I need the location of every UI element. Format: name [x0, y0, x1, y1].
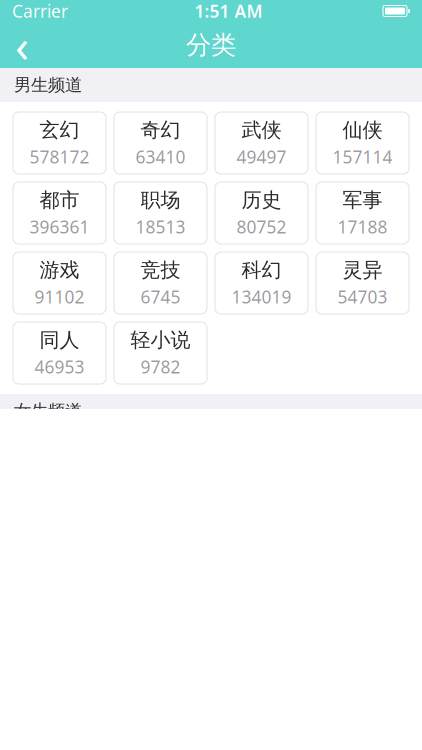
- button[interactable]: 历史: [215, 182, 308, 244]
- button[interactable]: 游戏: [13, 252, 106, 314]
- staticText: 9782: [140, 355, 180, 378]
- staticText: 157114: [332, 145, 392, 168]
- staticText: 1:51 AM: [194, 0, 262, 22]
- staticText: 灵异: [342, 258, 382, 282]
- button[interactable]: 玄幻: [13, 112, 106, 174]
- staticText: 科幻: [241, 258, 281, 282]
- button[interactable]: 科幻: [215, 252, 308, 314]
- button[interactable]: Back: [0, 23, 44, 67]
- staticText: 男生频道: [14, 74, 82, 96]
- staticText: 军事: [342, 188, 382, 212]
- staticText: 49497: [236, 145, 286, 168]
- staticText: 396361: [29, 215, 89, 238]
- button[interactable]: 轻小说: [114, 322, 207, 384]
- button[interactable]: 武侠: [215, 112, 308, 174]
- button[interactable]: 灵异: [316, 252, 409, 314]
- button[interactable]: 同人: [13, 322, 106, 384]
- staticText: 仙侠: [342, 118, 382, 142]
- staticText: 玄幻: [39, 118, 79, 142]
- staticText: 竞技: [140, 258, 180, 282]
- button[interactable]: 军事: [316, 182, 409, 244]
- staticText: 都市: [39, 188, 79, 212]
- staticText: 分类: [186, 29, 236, 60]
- staticText: 54703: [337, 285, 387, 308]
- staticText: Carrier: [12, 0, 68, 22]
- staticText: 134019: [231, 285, 291, 308]
- staticText: 91102: [34, 285, 84, 308]
- staticText: 17188: [337, 215, 387, 238]
- staticText: 游戏: [39, 258, 79, 282]
- staticText: 63410: [135, 145, 185, 168]
- button[interactable]: 竞技: [114, 252, 207, 314]
- staticText: 职场: [140, 188, 180, 212]
- staticText: 578172: [29, 145, 89, 168]
- staticText: 同人: [39, 328, 79, 352]
- staticText: ‹: [15, 15, 29, 75]
- button[interactable]: 奇幻: [114, 112, 207, 174]
- staticText: 女生频道: [14, 400, 82, 422]
- staticText: 武侠: [241, 118, 281, 142]
- button[interactable]: 职场: [114, 182, 207, 244]
- button[interactable]: 都市: [13, 182, 106, 244]
- staticText: 6745: [140, 285, 180, 308]
- staticText: 历史: [241, 188, 281, 212]
- staticText: 轻小说: [130, 328, 190, 352]
- staticText: 80752: [236, 215, 286, 238]
- staticText: 18513: [135, 215, 185, 238]
- staticText: 46953: [34, 355, 84, 378]
- button[interactable]: 仙侠: [316, 112, 409, 174]
- staticText: 奇幻: [140, 118, 180, 142]
